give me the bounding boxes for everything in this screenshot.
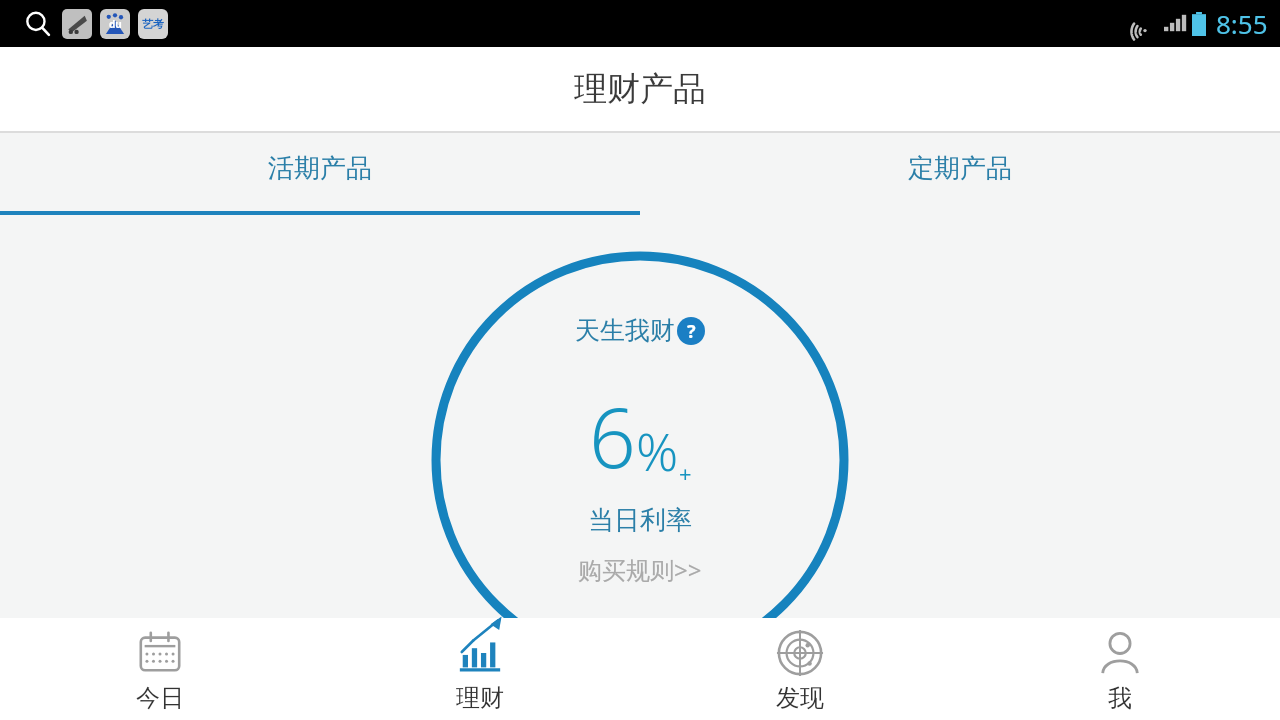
button[interactable]: 理财 [320, 618, 640, 720]
button[interactable]: Search [18, 4, 58, 44]
button[interactable]: 购买规则>> [578, 553, 702, 586]
button[interactable]: Help [677, 317, 705, 345]
staticText: 我 [1108, 683, 1132, 713]
staticText: 理财 [456, 683, 504, 713]
staticText: % [636, 415, 679, 486]
staticText: + [679, 458, 692, 488]
staticText: 天生我财 [575, 315, 675, 346]
button[interactable]: 我 [960, 618, 1280, 720]
staticText: 定期产品 [908, 152, 1012, 185]
button[interactable]: 今日 [0, 618, 320, 720]
staticText: 今日 [136, 683, 184, 713]
staticText: ? [687, 319, 696, 344]
staticText: 购买规则>> [578, 553, 702, 586]
button[interactable]: 发现 [640, 618, 960, 720]
staticText: 8:55 [1216, 6, 1268, 41]
staticText: 理财产品 [574, 68, 706, 110]
button[interactable]: 活期产品 [0, 133, 640, 215]
staticText: 当日利率 [588, 504, 692, 537]
staticText: 发现 [776, 683, 824, 713]
staticText: 艺考 [142, 17, 164, 31]
staticText: 6 [589, 380, 636, 492]
staticText: du [109, 17, 122, 31]
staticText: 活期产品 [268, 152, 372, 185]
button[interactable]: 定期产品 [640, 133, 1280, 215]
